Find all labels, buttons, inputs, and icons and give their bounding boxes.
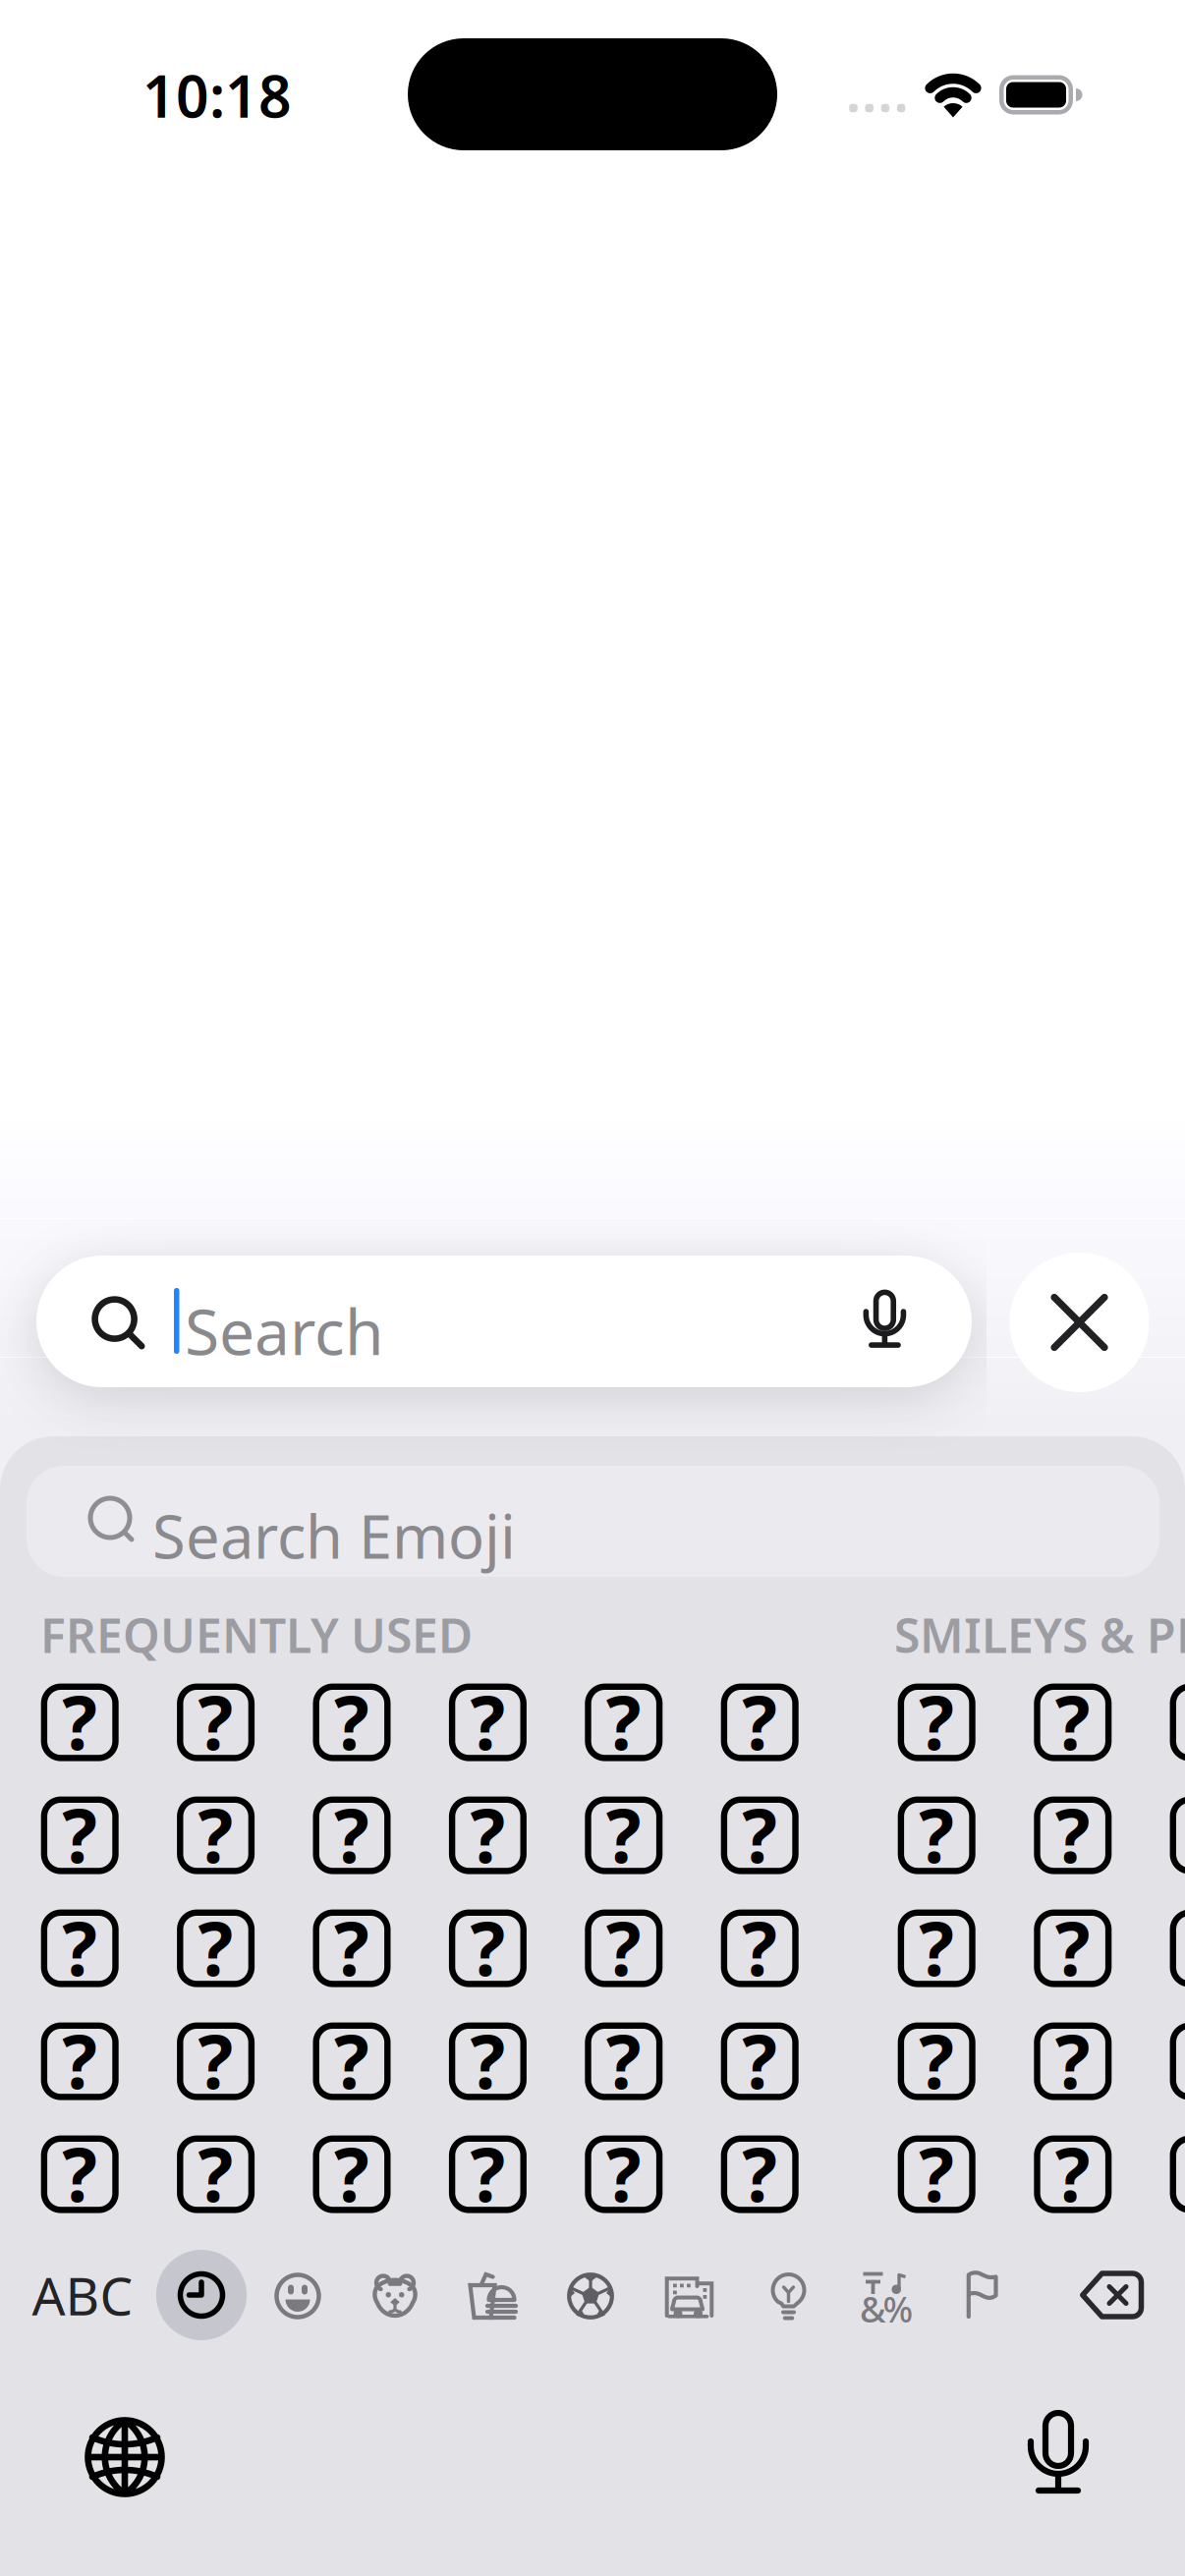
- button[interactable]: Emoji: [449, 2022, 527, 2100]
- button[interactable]: Activity: [567, 2272, 614, 2320]
- button[interactable]: Animals & Nature: [371, 2272, 419, 2320]
- button[interactable]: Emoji: [721, 1684, 799, 1761]
- staticText: ?: [606, 2012, 641, 2109]
- staticText: &: [860, 2285, 886, 2332]
- button[interactable]: Emoji: [449, 1797, 527, 1874]
- staticText: ?: [62, 1673, 97, 1770]
- staticText: ?: [919, 1899, 954, 1996]
- button[interactable]: Emoji: [449, 1684, 527, 1761]
- button[interactable]: Emoji: [1034, 1684, 1112, 1761]
- staticText: ?: [1055, 1786, 1090, 1883]
- button[interactable]: Smileys & People: [274, 2272, 321, 2320]
- staticText: 10:18: [142, 57, 292, 134]
- staticText: ?: [606, 2125, 641, 2222]
- staticText: ?: [470, 1899, 505, 1996]
- staticText: ?: [334, 2012, 369, 2109]
- button[interactable]: Emoji: [177, 2022, 255, 2100]
- staticText: ?: [1055, 1673, 1090, 1770]
- button[interactable]: Travel & Places: [665, 2272, 714, 2320]
- staticText: Search Emoji: [152, 1495, 516, 1575]
- button[interactable]: Emoji: [41, 1910, 119, 1987]
- button[interactable]: Emoji: [1034, 1910, 1112, 1987]
- staticText: ?: [62, 2012, 97, 2109]
- staticText: ?: [742, 2012, 777, 2109]
- staticText: ?: [62, 1786, 97, 1883]
- button[interactable]: Emoji: [721, 1797, 799, 1874]
- staticText: FREQUENTLY USED: [40, 1603, 473, 1666]
- button[interactable]: Emoji: [898, 2135, 975, 2213]
- button[interactable]: Emoji: [721, 2135, 799, 2213]
- button[interactable]: Emoji: [41, 2135, 119, 2213]
- button[interactable]: Emoji: [721, 2022, 799, 2100]
- staticText: ?: [198, 2125, 233, 2222]
- staticText: SMILEYS & PEOPLE: [894, 1603, 1185, 1666]
- staticText: ?: [919, 2012, 954, 2109]
- button[interactable]: Emoji: [721, 1910, 799, 1987]
- button[interactable]: Emoji: [1170, 2135, 1185, 2213]
- staticText: ?: [919, 2125, 954, 2222]
- staticText: ?: [470, 1673, 505, 1770]
- staticText: ?: [470, 2012, 505, 2109]
- button[interactable]: Frequently Used: [156, 2250, 247, 2340]
- button[interactable]: Emoji: [177, 1684, 255, 1761]
- staticText: ?: [198, 1786, 233, 1883]
- staticText: ?: [606, 1899, 641, 1996]
- button[interactable]: Close: [1010, 1253, 1149, 1392]
- button[interactable]: Flags: [965, 2270, 1000, 2320]
- button[interactable]: Emoji: [1170, 1684, 1185, 1761]
- button[interactable]: Emoji: [898, 1910, 975, 1987]
- button[interactable]: Emoji: [313, 1684, 391, 1761]
- button[interactable]: Emoji: [177, 2135, 255, 2213]
- button[interactable]: Emoji: [41, 2022, 119, 2100]
- button[interactable]: Search: [36, 1256, 972, 1387]
- staticText: ?: [742, 1673, 777, 1770]
- staticText: ?: [1055, 2012, 1090, 2109]
- button[interactable]: Emoji: [585, 2022, 663, 2100]
- button[interactable]: Delete: [1080, 2270, 1145, 2320]
- staticText: ?: [1055, 1899, 1090, 1996]
- button[interactable]: Emoji: [177, 1797, 255, 1874]
- button[interactable]: Emoji: [1170, 1797, 1185, 1874]
- button[interactable]: Dictate: [1029, 2411, 1088, 2499]
- button[interactable]: Emoji: [585, 2135, 663, 2213]
- button[interactable]: Emoji: [1170, 2022, 1185, 2100]
- button[interactable]: Emoji: [41, 1684, 119, 1761]
- button[interactable]: Emoji: [1034, 1797, 1112, 1874]
- staticText: ?: [334, 1673, 369, 1770]
- button[interactable]: Next Keyboard: [85, 2417, 165, 2497]
- button[interactable]: Objects: [769, 2272, 808, 2320]
- staticText: ABC: [32, 2260, 133, 2330]
- button[interactable]: Food & Drink: [467, 2272, 518, 2320]
- button[interactable]: Emoji: [898, 1797, 975, 1874]
- staticText: %: [883, 2285, 913, 2332]
- staticText: ?: [334, 1899, 369, 1996]
- button[interactable]: Emoji: [1034, 2135, 1112, 2213]
- staticText: ?: [334, 2125, 369, 2222]
- button[interactable]: Emoji: [898, 1684, 975, 1761]
- staticText: ?: [334, 1786, 369, 1883]
- button[interactable]: Emoji: [1170, 1910, 1185, 1987]
- button[interactable]: Emoji: [177, 1910, 255, 1987]
- staticText: ?: [742, 2125, 777, 2222]
- button[interactable]: Emoji: [313, 1910, 391, 1987]
- button[interactable]: Emoji: [585, 1910, 663, 1987]
- staticText: ?: [1055, 2125, 1090, 2222]
- button[interactable]: Emoji: [313, 2022, 391, 2100]
- button[interactable]: Emoji: [585, 1797, 663, 1874]
- staticText: ?: [198, 2012, 233, 2109]
- staticText: ?: [470, 2125, 505, 2222]
- button[interactable]: Emoji: [41, 1797, 119, 1874]
- staticText: ?: [198, 1673, 233, 1770]
- button[interactable]: Emoji: [313, 2135, 391, 2213]
- button[interactable]: Emoji: [449, 1910, 527, 1987]
- button[interactable]: Emoji: [898, 2022, 975, 2100]
- staticText: ?: [470, 1786, 505, 1883]
- button[interactable]: Emoji: [1034, 2022, 1112, 2100]
- staticText: ?: [606, 1786, 641, 1883]
- button[interactable]: ABC: [32, 2260, 133, 2330]
- button[interactable]: Emoji: [449, 2135, 527, 2213]
- button[interactable]: Emoji: [585, 1684, 663, 1761]
- button[interactable]: Emoji: [313, 1797, 391, 1874]
- button[interactable]: Symbols: [862, 2271, 909, 2321]
- staticText: ?: [62, 2125, 97, 2222]
